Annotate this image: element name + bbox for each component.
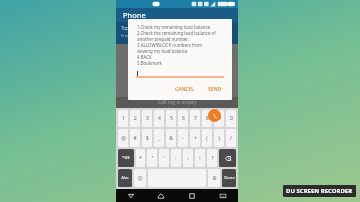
staticText: 0: [230, 115, 233, 122]
button[interactable]: 8: [202, 110, 212, 127]
staticText: viewing my load balance: [137, 48, 188, 54]
button[interactable]: 6: [178, 110, 188, 127]
staticText: ): [218, 135, 220, 142]
staticText: Call log is empty: [158, 99, 197, 106]
staticText: $: [146, 135, 149, 142]
staticText: 4.BACK: [137, 54, 152, 60]
staticText: :: [175, 155, 177, 162]
staticText: ": [151, 155, 154, 162]
staticText: 6: [182, 115, 185, 122]
button[interactable]: -: [178, 129, 188, 147]
staticText: _: [158, 135, 161, 142]
button[interactable]: @: [118, 129, 128, 147]
staticText: #: [133, 135, 137, 142]
staticText: SEND: [208, 86, 222, 93]
staticText: 4: [158, 115, 161, 122]
staticText: 9: [218, 115, 221, 122]
staticText: @: [121, 135, 126, 142]
button[interactable]: &: [166, 129, 176, 147]
button[interactable]: *#$: [118, 149, 134, 167]
staticText: 3.ALLOW/BLOCK numbers from: [137, 42, 203, 48]
staticText: ☺: [137, 175, 143, 181]
button[interactable]: ?: [207, 149, 217, 167]
staticText: !: [199, 155, 201, 162]
staticText: DU SCREEN RECORDER: [286, 187, 353, 195]
staticText: /: [230, 135, 232, 142]
button[interactable]: !: [195, 149, 205, 167]
staticText: ;: [187, 155, 189, 162]
button[interactable]: 3: [142, 110, 152, 127]
staticText: *: [139, 155, 142, 162]
button[interactable]: 4: [154, 110, 164, 127]
button[interactable]: Recents: [176, 189, 207, 202]
staticText: ⚙: [212, 175, 217, 181]
button[interactable]: *: [136, 149, 145, 167]
staticText: 1: [122, 115, 125, 122]
button[interactable]: 2: [130, 110, 140, 127]
button[interactable]: ☺: [134, 169, 146, 187]
staticText: 3: [146, 115, 149, 122]
staticText: -: [182, 135, 184, 142]
button[interactable]: Home: [146, 189, 176, 202]
button[interactable]: SEND: [206, 84, 224, 95]
staticText: 7: [194, 115, 197, 122]
button[interactable]: _: [154, 129, 164, 147]
button[interactable]: #: [130, 129, 140, 147]
staticText: CANCEL: [175, 86, 194, 93]
button[interactable]: :: [171, 149, 181, 167]
button[interactable]: 0: [226, 110, 236, 127]
staticText: Done: [224, 175, 235, 181]
button[interactable]: Back: [116, 189, 146, 202]
staticText: Abc: [121, 175, 129, 181]
button[interactable]: 5: [166, 110, 176, 127]
button[interactable]: Done: [222, 169, 236, 187]
button[interactable]: ;: [183, 149, 193, 167]
staticText: (: [206, 135, 208, 142]
button[interactable]: /: [226, 129, 236, 147]
staticText: &: [169, 135, 173, 142]
staticText: 8: [206, 115, 209, 122]
button[interactable]: Phone: [116, 8, 238, 22]
button[interactable]: ⚙: [208, 169, 220, 187]
button[interactable]: 7: [190, 110, 200, 127]
button[interactable]: ': [159, 149, 169, 167]
button[interactable]: ): [214, 129, 224, 147]
staticText: ': [163, 155, 165, 162]
staticText: Phone: [123, 10, 146, 20]
button[interactable]: $: [142, 129, 152, 147]
staticText: 5.Bookmark: [137, 60, 162, 66]
staticText: another prepaid number.: [137, 36, 189, 42]
staticText: *#$: [122, 155, 130, 161]
button[interactable]: Dial: [208, 109, 221, 122]
button[interactable]: CANCEL: [173, 84, 196, 95]
button[interactable]: Abc: [118, 169, 132, 187]
staticText: +: [194, 135, 197, 142]
button[interactable]: Delete: [219, 149, 236, 167]
staticText: Top contacts: [121, 25, 148, 31]
staticText: ?: [211, 155, 214, 162]
staticText: 2.Check the remaining load balance of: [137, 30, 216, 36]
staticText: 5: [170, 115, 173, 122]
button[interactable]: ": [147, 149, 157, 167]
staticText: 2: [134, 115, 137, 122]
button[interactable]: Keyboard: [207, 189, 238, 202]
button[interactable]: 9: [214, 110, 224, 127]
staticText: Frequently: [121, 33, 142, 38]
button[interactable]: +: [190, 129, 200, 147]
button[interactable]: 1: [118, 110, 128, 127]
staticText: 1.Check my remaining load balance.: [137, 24, 212, 30]
button[interactable]: (: [202, 129, 212, 147]
